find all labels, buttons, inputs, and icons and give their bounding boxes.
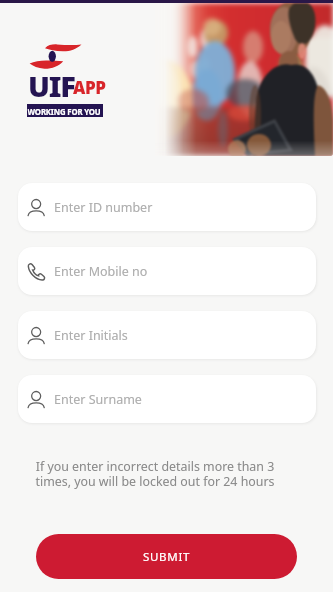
staticText: Enter Initials	[54, 327, 128, 344]
button[interactable]: Enter Initials	[18, 311, 316, 359]
button[interactable]: Enter ID number	[18, 183, 316, 231]
staticText: APP	[73, 76, 106, 99]
staticText: Enter Mobile no	[54, 263, 148, 280]
staticText: If you enter incorrect details more than…	[29, 458, 281, 489]
staticText: Enter Surname	[54, 391, 142, 408]
staticText: SUBMIT	[143, 549, 191, 565]
button[interactable]: SUBMIT	[36, 534, 297, 579]
staticText: UIF	[28, 66, 75, 105]
button[interactable]: Enter Surname	[18, 375, 316, 423]
button[interactable]: Enter Mobile no	[18, 247, 316, 295]
staticText: Enter ID number	[54, 199, 153, 216]
staticText: WORKING FOR YOU	[28, 104, 102, 117]
